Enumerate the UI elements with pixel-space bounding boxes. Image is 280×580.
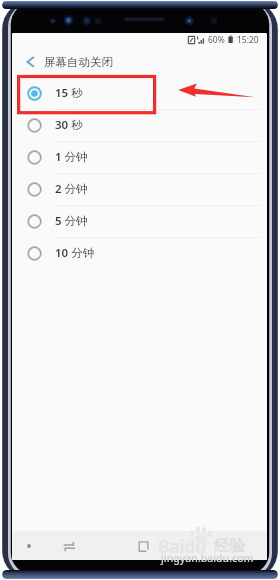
staticText: 2 分钟 (55, 181, 88, 197)
staticText: Baidu (158, 535, 207, 558)
button[interactable]: 主页 (130, 536, 156, 556)
button[interactable]: 10 分钟 (12, 237, 267, 269)
staticText: 屏幕自动关闭 (44, 55, 113, 69)
staticText: 60% (208, 34, 225, 46)
button[interactable]: 15 秒 (12, 77, 267, 109)
button[interactable]: 5 分钟 (12, 205, 267, 237)
button[interactable]: 最近任务 (56, 537, 82, 555)
staticText: 15 秒 (55, 85, 83, 101)
staticText: 10 分钟 (55, 245, 95, 261)
button[interactable]: 30 秒 (12, 109, 267, 141)
button[interactable]: 返回 (21, 538, 37, 554)
staticText: 1 分钟 (55, 149, 88, 165)
staticText: 15:20 (237, 34, 259, 46)
button[interactable]: 2 分钟 (12, 173, 267, 205)
button[interactable]: 1 分钟 (12, 141, 267, 173)
staticText: 经验 (214, 536, 245, 556)
staticText: jingyan.baidu.com (161, 551, 254, 565)
staticText: 30 秒 (55, 117, 83, 133)
staticText: 5 分钟 (55, 213, 88, 229)
button[interactable]: 返回 (12, 46, 44, 77)
